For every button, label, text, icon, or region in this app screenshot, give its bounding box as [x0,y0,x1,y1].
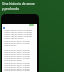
staticText: Lorem ipsum dolor sit amet consectetur a… [4,59,23,62]
staticText: Lorem ipsum dolor sit amet consectetur a… [4,68,38,71]
staticText: Lorem ipsum dolor sit amet consectetur a… [4,37,25,40]
staticText: Lorem ipsum dolor sit amet consectetur a… [4,69,31,72]
staticText: Lorem ipsum dolor sit amet consectetur a… [4,51,38,54]
staticText: Lorem ipsum dolor sit amet consectetur a… [4,53,38,56]
staticText: Lorem ipsum dolor sit amet consectetur a… [4,40,38,43]
staticText: Lorem ipsum dolor sit amet consectetur a… [4,33,38,36]
staticText: Lorem ipsum dolor sit amet consectetur a… [4,62,38,65]
button[interactable]: Article [2,24,37,72]
staticText: Lorem ipsum dolor sit amet consectetur a… [4,31,38,34]
staticText: Lorem ipsum dolor sit amet consectetur a… [4,42,38,45]
staticText: y profundo [2,6,20,10]
staticText: Lorem ipsum dolor sit amet consectetur a… [4,29,38,32]
staticText: Lorem ipsum dolor sit amet consectetur a… [4,64,38,67]
staticText: Una historia de amor [2,1,35,5]
staticText: Lorem ipsum dolor sit amet consectetur a… [4,55,38,58]
button[interactable]: Label [29,24,34,26]
staticText: Lorem ipsum dolor sit amet consectetur a… [4,44,20,47]
staticText: Lorem ipsum dolor sit amet consectetur a… [4,49,38,52]
staticText: Lorem ipsum dolor sit amet consectetur a… [4,57,38,60]
staticText: Lorem ipsum dolor sit amet consectetur a… [4,35,38,38]
staticText: Lorem ipsum dolor sit amet consectetur a… [4,66,38,69]
